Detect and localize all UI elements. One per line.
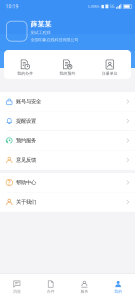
button[interactable]: 注册单位 [89, 59, 131, 76]
button[interactable]: 关于我们 [0, 192, 135, 211]
button[interactable]: 我的 [101, 280, 135, 294]
staticText: 注册单位 [102, 71, 118, 76]
staticText: 关于我们 [16, 199, 36, 205]
button[interactable]: ? [0, 173, 135, 192]
button[interactable]: 我的办件 [4, 59, 46, 76]
staticText: 提醒设置 [16, 118, 36, 124]
button[interactable]: 预约服务 [0, 131, 135, 150]
staticText: 消息 [13, 289, 21, 294]
staticText: 服务 [80, 289, 88, 294]
staticText: 薛某某 [31, 20, 52, 29]
staticText: 我的 [114, 289, 122, 294]
staticText: 办件 [47, 289, 55, 294]
staticText: 测试工程师 [31, 30, 51, 35]
staticText: 我的办件 [17, 71, 33, 76]
staticText: 账号与安全 [16, 98, 41, 105]
staticText: ? [8, 178, 11, 187]
staticText: 我的预约 [59, 71, 75, 76]
staticText: 全国印象在线科技有限公司 [31, 37, 79, 42]
button[interactable]: 服务 [67, 280, 101, 294]
button[interactable]: 我的预约 [46, 59, 89, 76]
staticText: 5G [110, 4, 115, 9]
button[interactable]: 提醒设置 [0, 111, 135, 130]
staticText: 10:19 [5, 3, 18, 10]
button[interactable]: 账号与安全 [0, 92, 135, 111]
staticText: 预约服务 [16, 137, 36, 144]
staticText: 意见反馈 [16, 157, 36, 163]
staticText: 5.00K/s [88, 4, 100, 9]
button[interactable]: 意见反馈 [0, 150, 135, 169]
button[interactable]: 消息 [0, 280, 34, 294]
button[interactable]: 办件 [34, 280, 68, 294]
staticText: 帮助中心 [16, 179, 36, 186]
